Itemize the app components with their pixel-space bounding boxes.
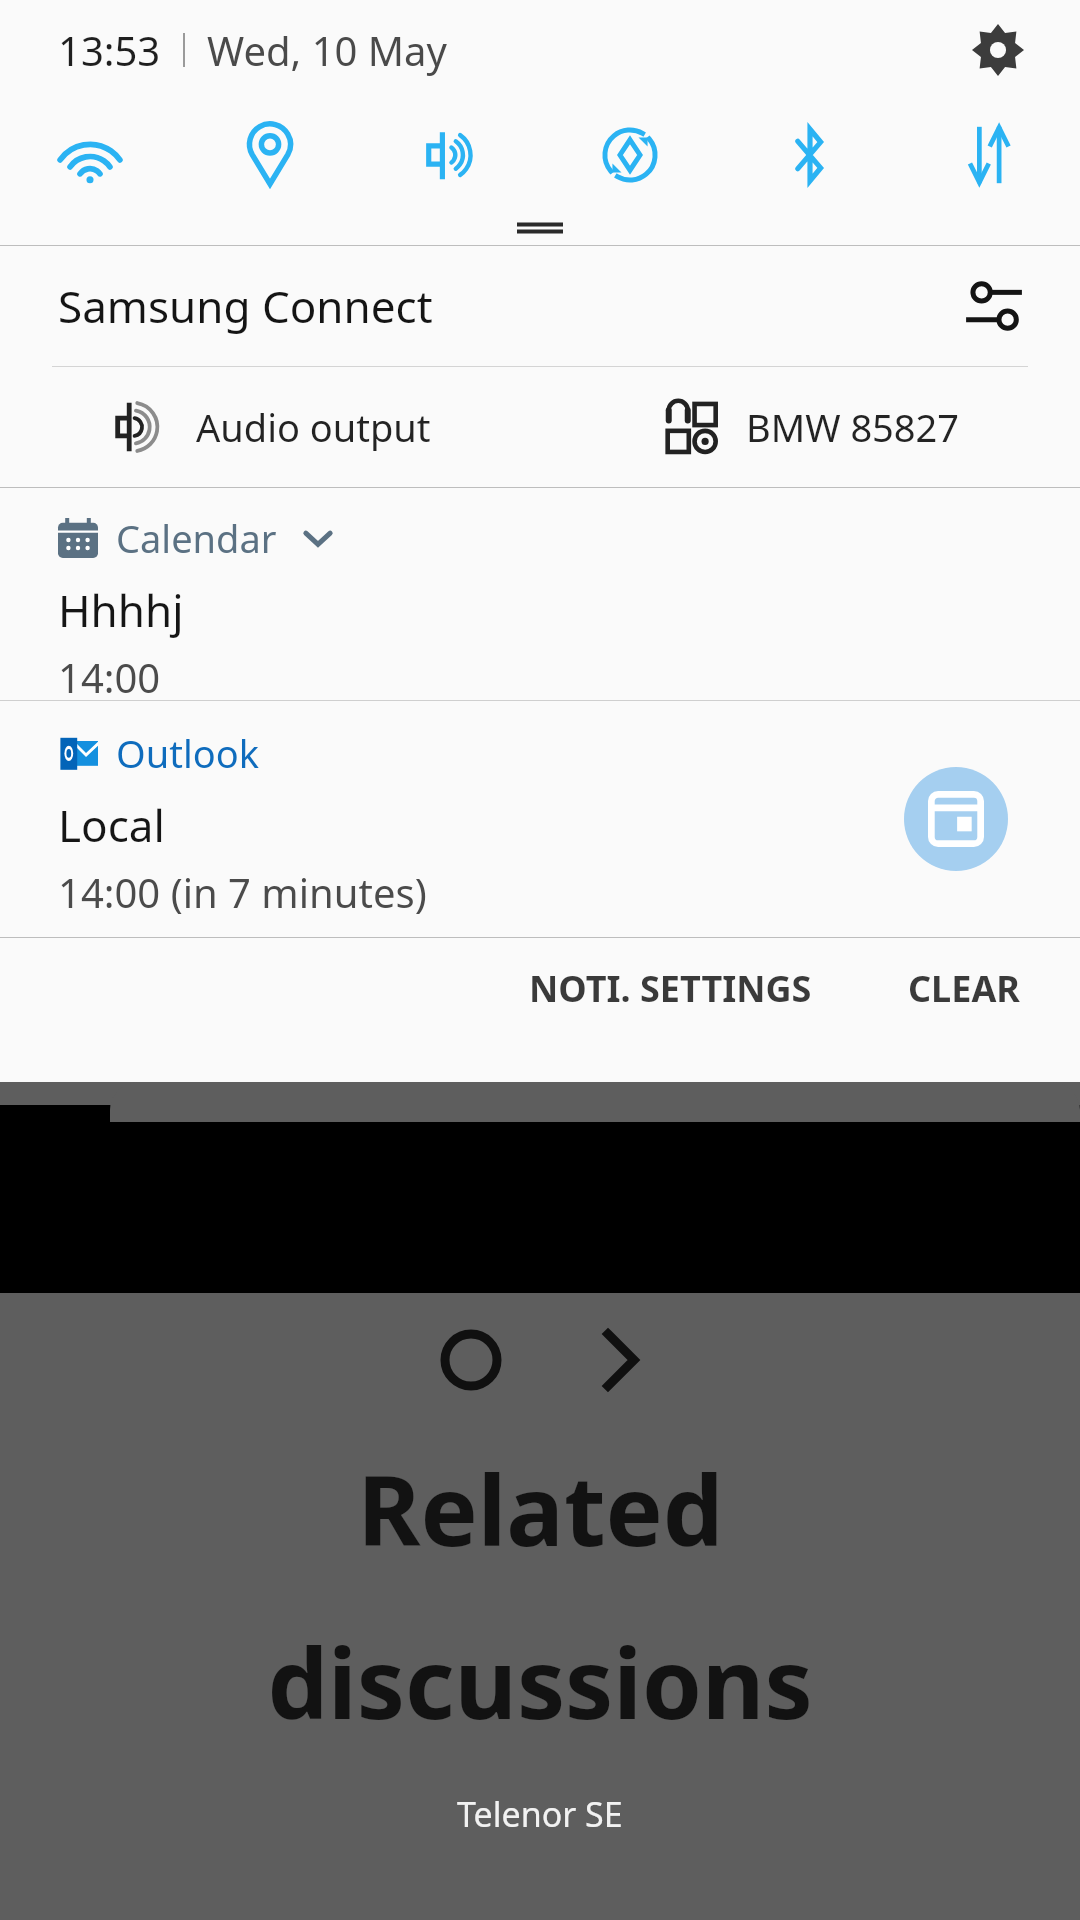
staticText: Calendar: [116, 512, 277, 564]
staticText: Hhhhj: [58, 580, 184, 640]
button[interactable]: Settings: [958, 270, 1030, 342]
button[interactable]: Sound: [360, 100, 540, 210]
button[interactable]: BMW 85827: [540, 367, 1080, 487]
button[interactable]: Settings: [960, 12, 1036, 88]
button[interactable]: Outlook: [0, 701, 1080, 937]
staticText: Audio output: [196, 401, 431, 453]
staticText: CLEAR: [908, 964, 1020, 1013]
staticText: 14:00 (in 7 minutes): [58, 865, 427, 919]
staticText: 14:00: [58, 650, 161, 700]
button[interactable]: NOTI. SETTINGS: [505, 938, 836, 1038]
staticText: Samsung Connect: [58, 276, 433, 336]
staticText: BMW 85827: [746, 401, 960, 453]
button[interactable]: Calendar: [0, 488, 1080, 700]
staticText: Local: [58, 795, 165, 855]
staticText: Outlook: [116, 727, 259, 779]
button[interactable]: Open in pop-up view: [904, 767, 1008, 871]
staticText: NOTI. SETTINGS: [529, 964, 812, 1013]
staticText: discussions: [267, 1616, 813, 1747]
button[interactable]: Mobile data: [900, 100, 1080, 210]
button[interactable]: Bluetooth: [720, 100, 900, 210]
staticText: Telenor SE: [457, 1791, 623, 1837]
button[interactable]: CLEAR: [884, 938, 1044, 1038]
button[interactable]: Expand: [295, 515, 341, 561]
button[interactable]: Location: [180, 100, 360, 210]
staticText: 13:53: [58, 23, 161, 77]
staticText: Related: [357, 1443, 724, 1574]
button[interactable]: Wi-Fi: [0, 100, 180, 210]
button[interactable]: Auto rotate: [540, 100, 720, 210]
staticText: Wed, 10 May: [207, 23, 447, 77]
button[interactable]: Samsung Connect: [0, 246, 1080, 366]
button[interactable]: Audio output: [0, 367, 540, 487]
